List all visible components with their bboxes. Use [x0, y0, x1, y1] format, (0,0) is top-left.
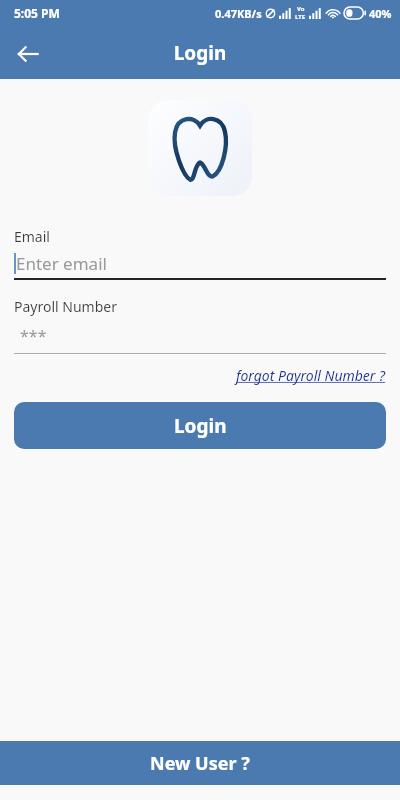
staticText: Vo — [297, 5, 305, 13]
button[interactable]: *** — [14, 324, 386, 354]
staticText: 5:05 PM — [14, 5, 60, 21]
staticText: forgot Payroll Number ? — [236, 366, 386, 385]
button[interactable]: Login — [14, 402, 386, 449]
staticText: *** — [20, 325, 47, 347]
button[interactable]: forgot Payroll Number ? — [236, 366, 386, 385]
staticText: Login — [0, 40, 400, 66]
staticText: Enter email — [16, 252, 107, 275]
button[interactable]: New User ? — [0, 741, 400, 785]
staticText: LTE — [295, 13, 306, 21]
staticText: Payroll Number — [14, 297, 117, 316]
button[interactable]: Back — [10, 36, 46, 72]
staticText: 0.47KB/s — [215, 6, 262, 21]
staticText: New User ? — [150, 751, 250, 776]
staticText: Email — [14, 227, 50, 246]
staticText: 40% — [369, 6, 392, 21]
staticText: Login — [174, 413, 227, 439]
button[interactable]: Enter email — [14, 252, 386, 280]
